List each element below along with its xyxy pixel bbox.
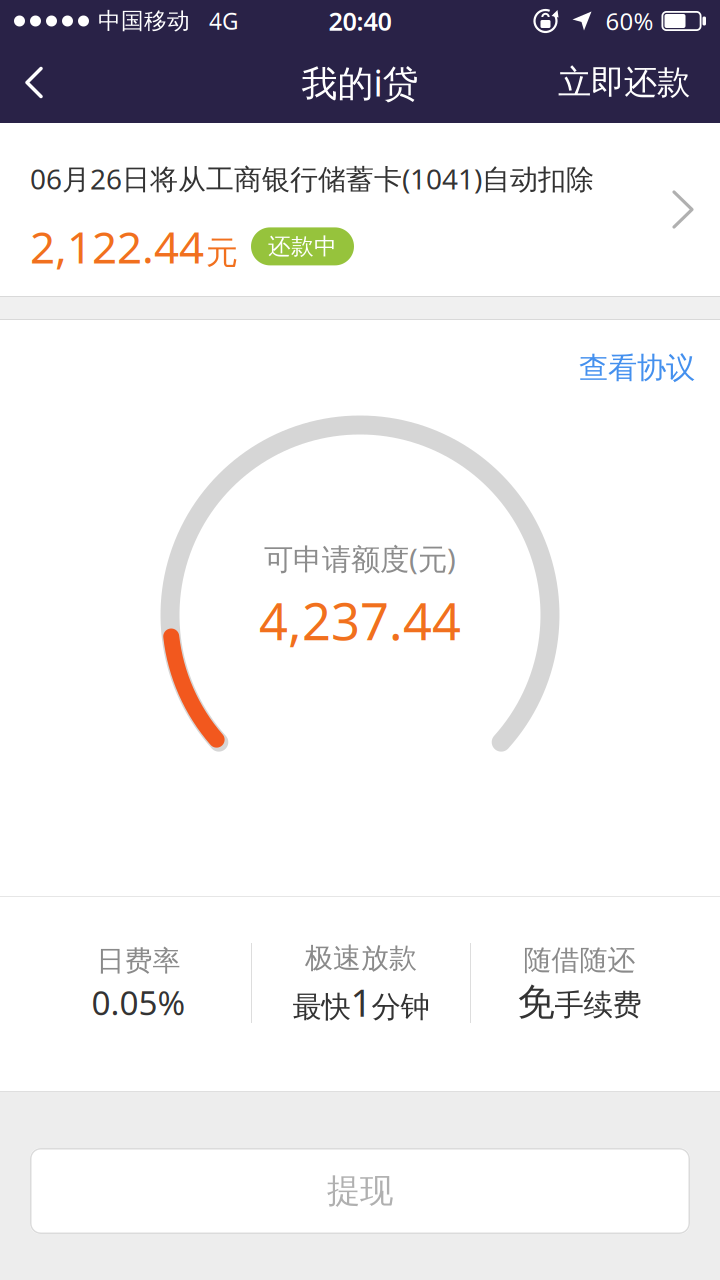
- button[interactable]: Back: [0, 54, 43, 110]
- staticText: 4G: [209, 6, 239, 36]
- staticText: 提现: [327, 1170, 393, 1211]
- staticText: 还款中: [268, 232, 337, 260]
- staticText: 1: [350, 977, 371, 1027]
- staticText: 随借随还: [523, 943, 635, 977]
- staticText: 20:40: [328, 4, 391, 38]
- staticText: 60%: [605, 5, 653, 37]
- button[interactable]: 06月26日将从工商银行储蓄卡(1041)自动扣除: [0, 123, 720, 296]
- button[interactable]: 提现: [30, 1148, 690, 1234]
- staticText: 元: [206, 233, 238, 272]
- staticText: 中国移动: [98, 7, 190, 35]
- staticText: 我的i贷: [301, 59, 418, 106]
- staticText: 查看协议: [579, 350, 695, 386]
- button[interactable]: 查看协议: [579, 320, 720, 386]
- staticText: 分钟: [371, 989, 429, 1025]
- staticText: 0.05%: [91, 980, 185, 1024]
- staticText: 免: [517, 979, 554, 1025]
- staticText: 可申请额度(元): [264, 539, 456, 578]
- staticText: 最快: [292, 989, 350, 1025]
- staticText: 极速放款: [305, 941, 417, 975]
- staticText: 手续费: [554, 987, 641, 1023]
- button[interactable]: 立即还款: [558, 50, 720, 115]
- staticText: 4,237.44: [259, 587, 461, 654]
- staticText: 2,122.44: [30, 217, 204, 276]
- staticText: 日费率: [96, 944, 180, 978]
- staticText: 立即还款: [558, 62, 690, 103]
- staticText: 06月26日将从工商银行储蓄卡(1041)自动扣除: [30, 160, 594, 197]
